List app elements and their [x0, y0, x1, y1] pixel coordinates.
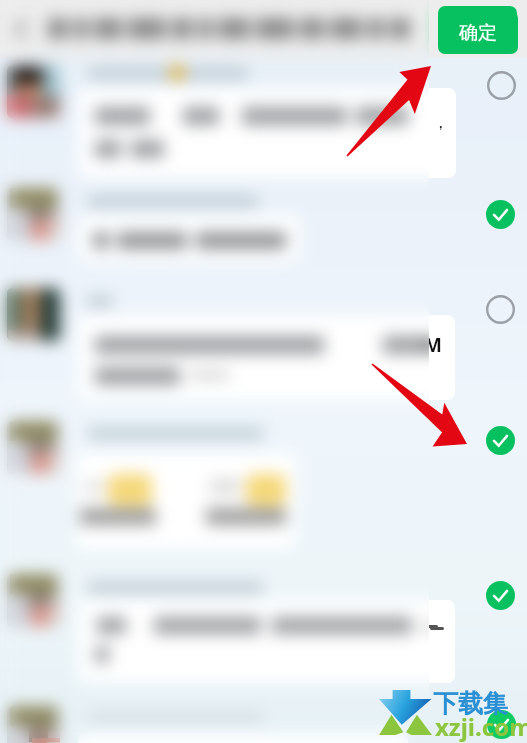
button[interactable]: Back	[2, 10, 40, 48]
button[interactable]: Back	[2, 10, 40, 48]
staticText: xzji.com	[435, 710, 527, 743]
button[interactable]: Avatar	[7, 574, 60, 627]
button[interactable]: Avatar	[7, 188, 60, 241]
button[interactable]: Select	[486, 295, 515, 324]
button[interactable]: Selected	[486, 200, 515, 229]
button[interactable]: Avatar	[7, 65, 60, 118]
button[interactable]: Avatar	[7, 421, 60, 474]
staticText: M	[424, 332, 442, 358]
button[interactable]: Select	[487, 71, 516, 100]
button[interactable]: Avatar	[7, 288, 60, 341]
staticText: 下载集	[433, 688, 508, 719]
button[interactable]: Avatar	[7, 706, 60, 743]
staticText: ，	[432, 112, 449, 133]
button[interactable]: Selected	[486, 581, 515, 610]
button[interactable]: Avatar	[7, 288, 60, 341]
button[interactable]: Selected	[486, 426, 515, 455]
staticText: 确定	[459, 21, 497, 45]
button[interactable]: Avatar	[7, 574, 60, 627]
button[interactable]: Avatar	[7, 706, 60, 743]
button[interactable]: Avatar	[7, 188, 60, 241]
button[interactable]: Avatar	[7, 421, 60, 474]
staticText: M	[424, 332, 442, 358]
button[interactable]: Avatar	[7, 65, 60, 118]
button[interactable]: 确定	[438, 11, 518, 54]
